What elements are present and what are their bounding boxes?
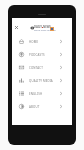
button[interactable]: ENGLISH <box>12 87 72 100</box>
button[interactable]: PODCASTS <box>12 48 72 61</box>
staticText: ENGLISH <box>29 92 43 96</box>
staticText: ABOUT <box>29 105 40 109</box>
button[interactable]: Close <box>12 23 21 32</box>
staticText: QUALITY MEDIA <box>29 79 53 83</box>
staticText: DAILY <box>34 25 42 29</box>
staticText: PODCASTS <box>29 53 45 57</box>
staticText: NEWS <box>43 25 51 29</box>
staticText: world news network <box>34 29 56 32</box>
button[interactable]: ABOUT <box>12 100 72 113</box>
staticText: HOME <box>29 40 39 44</box>
button[interactable]: HOME <box>12 35 72 48</box>
button[interactable]: CONTACT <box>12 61 72 74</box>
button[interactable]: QUALITY MEDIA <box>12 74 72 87</box>
staticText: CONTACT <box>29 66 43 70</box>
